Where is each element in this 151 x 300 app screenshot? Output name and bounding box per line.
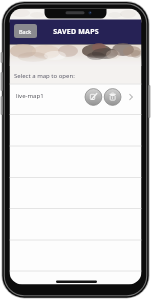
button[interactable]: Back bbox=[14, 24, 37, 38]
button[interactable] bbox=[104, 89, 121, 106]
button[interactable] bbox=[85, 89, 102, 106]
staticText: live-map1 bbox=[16, 92, 44, 100]
button[interactable]: live-map1 bbox=[10, 85, 141, 115]
staticText: SAVED MAPS bbox=[53, 27, 99, 37]
staticText: Select a map to open: bbox=[14, 72, 75, 80]
staticText: Back bbox=[19, 28, 32, 35]
